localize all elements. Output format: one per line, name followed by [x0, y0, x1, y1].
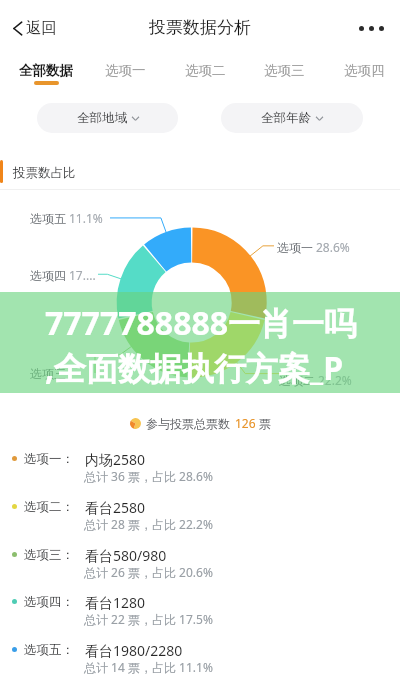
staticText: 参与投票总票数 — [146, 416, 230, 431]
staticText: 选项一： — [24, 451, 74, 467]
staticText: 28.6% — [316, 239, 350, 255]
button[interactable]: More options — [353, 18, 390, 39]
staticText: 总计 26 票，占比 20.6% — [84, 564, 213, 580]
staticText: 全部数据 — [19, 62, 73, 79]
button[interactable]: 返回 — [6, 12, 61, 44]
staticText: 选项四 — [344, 62, 385, 79]
button[interactable]: 选项二： — [0, 482, 400, 529]
button[interactable]: 选项一： — [0, 434, 400, 481]
button[interactable]: 选项五： — [0, 625, 400, 672]
button[interactable]: 全部地域 — [37, 103, 178, 133]
staticText: 总计 14 票，占比 11.1% — [84, 659, 213, 675]
staticText: 内场2580 — [85, 450, 146, 469]
button[interactable]: 选项四： — [0, 577, 400, 624]
staticText: 选项三 — [264, 62, 305, 79]
staticText: 选项四 — [30, 268, 66, 283]
staticText: 看台2580 — [85, 498, 146, 517]
staticText: 全部年龄 — [261, 110, 311, 126]
staticText: 看台580/980 — [85, 546, 167, 565]
button[interactable]: 选项一 — [85, 46, 165, 92]
staticText: 11.1% — [69, 210, 103, 226]
staticText: 投票数占比 — [13, 165, 76, 181]
button[interactable]: 选项四 — [324, 46, 400, 92]
staticText: 看台1280 — [85, 593, 146, 612]
staticText: 选项三 — [30, 366, 66, 381]
staticText: 选项二： — [24, 499, 74, 515]
staticText: 返回 — [26, 18, 57, 38]
staticText: 22.2% — [318, 372, 352, 388]
staticText: 17.... — [69, 267, 96, 283]
staticText: 选项五： — [24, 642, 74, 658]
staticText: 总计 36 票，占比 28.6% — [84, 468, 213, 484]
staticText: 选项二 — [185, 62, 226, 79]
button[interactable]: 选项二 — [165, 46, 245, 92]
staticText: 7777788888一肖一吗 — [45, 301, 357, 345]
staticText: 选项一 — [277, 240, 313, 255]
button[interactable]: 全部数据 — [6, 46, 86, 92]
button[interactable]: 选项三： — [0, 530, 400, 577]
staticText: 投票数据分析 — [149, 17, 251, 38]
button[interactable]: 全部年龄 — [221, 103, 363, 133]
staticText: 126 — [235, 415, 256, 431]
staticText: 选项二 — [279, 373, 315, 388]
staticText: 看台1980/2280 — [85, 641, 183, 660]
button[interactable]: 选项三 — [244, 46, 324, 92]
staticText: ,全面数据执行方案_P — [45, 346, 344, 390]
staticText: 选项四： — [24, 594, 74, 610]
staticText: 总计 28 票，占比 22.2% — [84, 516, 213, 532]
staticText: 选项三： — [24, 547, 74, 563]
staticText: 票 — [259, 416, 271, 431]
staticText: 选项五 — [30, 211, 66, 226]
staticText: 选项一 — [105, 62, 146, 79]
staticText: 全部地域 — [77, 110, 127, 126]
staticText: 总计 22 票，占比 17.5% — [84, 611, 213, 627]
